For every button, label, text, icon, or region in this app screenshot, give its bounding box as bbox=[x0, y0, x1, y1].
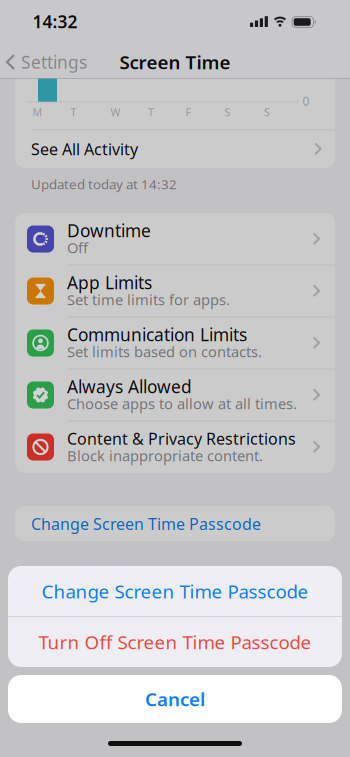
staticText: W bbox=[110, 105, 120, 119]
button[interactable]: Communication Limits bbox=[15, 317, 335, 369]
staticText: 0 bbox=[302, 93, 309, 109]
button[interactable]: Change Screen Time Passcode bbox=[15, 506, 335, 541]
staticText: Content & Privacy Restrictions bbox=[67, 428, 296, 449]
button[interactable]: Content & Privacy Restrictions bbox=[15, 421, 335, 473]
button[interactable]: See All Activity bbox=[15, 130, 335, 168]
staticText: Updated today at 14:32 bbox=[31, 175, 177, 193]
staticText: Set time limits for apps. bbox=[67, 290, 230, 309]
staticText: Block inappropriate content. bbox=[67, 446, 263, 465]
staticText: Choose apps to allow at all times. bbox=[67, 394, 297, 413]
staticText: Communication Limits bbox=[67, 323, 247, 346]
staticText: F bbox=[185, 105, 191, 119]
staticText: Cancel bbox=[145, 687, 205, 711]
staticText: Off bbox=[67, 238, 88, 257]
staticText: M bbox=[32, 105, 42, 119]
staticText: Change Screen Time Passcode bbox=[41, 579, 308, 604]
staticText: See All Activity bbox=[31, 138, 138, 160]
staticText: Turn Off Screen Time Passcode bbox=[38, 629, 311, 654]
button[interactable]: Change Screen Time Passcode bbox=[8, 566, 342, 616]
button[interactable]: Always Allowed bbox=[15, 369, 335, 421]
staticText: Set limits based on contacts. bbox=[67, 342, 262, 361]
button[interactable]: App Limits bbox=[15, 265, 335, 317]
staticText: T bbox=[70, 105, 76, 119]
staticText: Settings bbox=[21, 50, 87, 73]
staticText: 14:32 bbox=[32, 10, 77, 33]
staticText: App Limits bbox=[67, 271, 152, 294]
staticText: Always Allowed bbox=[67, 375, 192, 398]
staticText: Downtime bbox=[67, 219, 151, 242]
button[interactable]: Downtime bbox=[15, 213, 335, 265]
staticText: S bbox=[264, 105, 270, 119]
staticText: Screen Time bbox=[119, 50, 230, 74]
staticText: T bbox=[148, 105, 154, 119]
staticText: Change Screen Time Passcode bbox=[31, 513, 261, 534]
button[interactable]: Turn Off Screen Time Passcode bbox=[8, 617, 342, 667]
button[interactable]: Cancel bbox=[8, 675, 342, 723]
button[interactable]: Back bbox=[2, 46, 98, 78]
staticText: S bbox=[224, 105, 230, 119]
